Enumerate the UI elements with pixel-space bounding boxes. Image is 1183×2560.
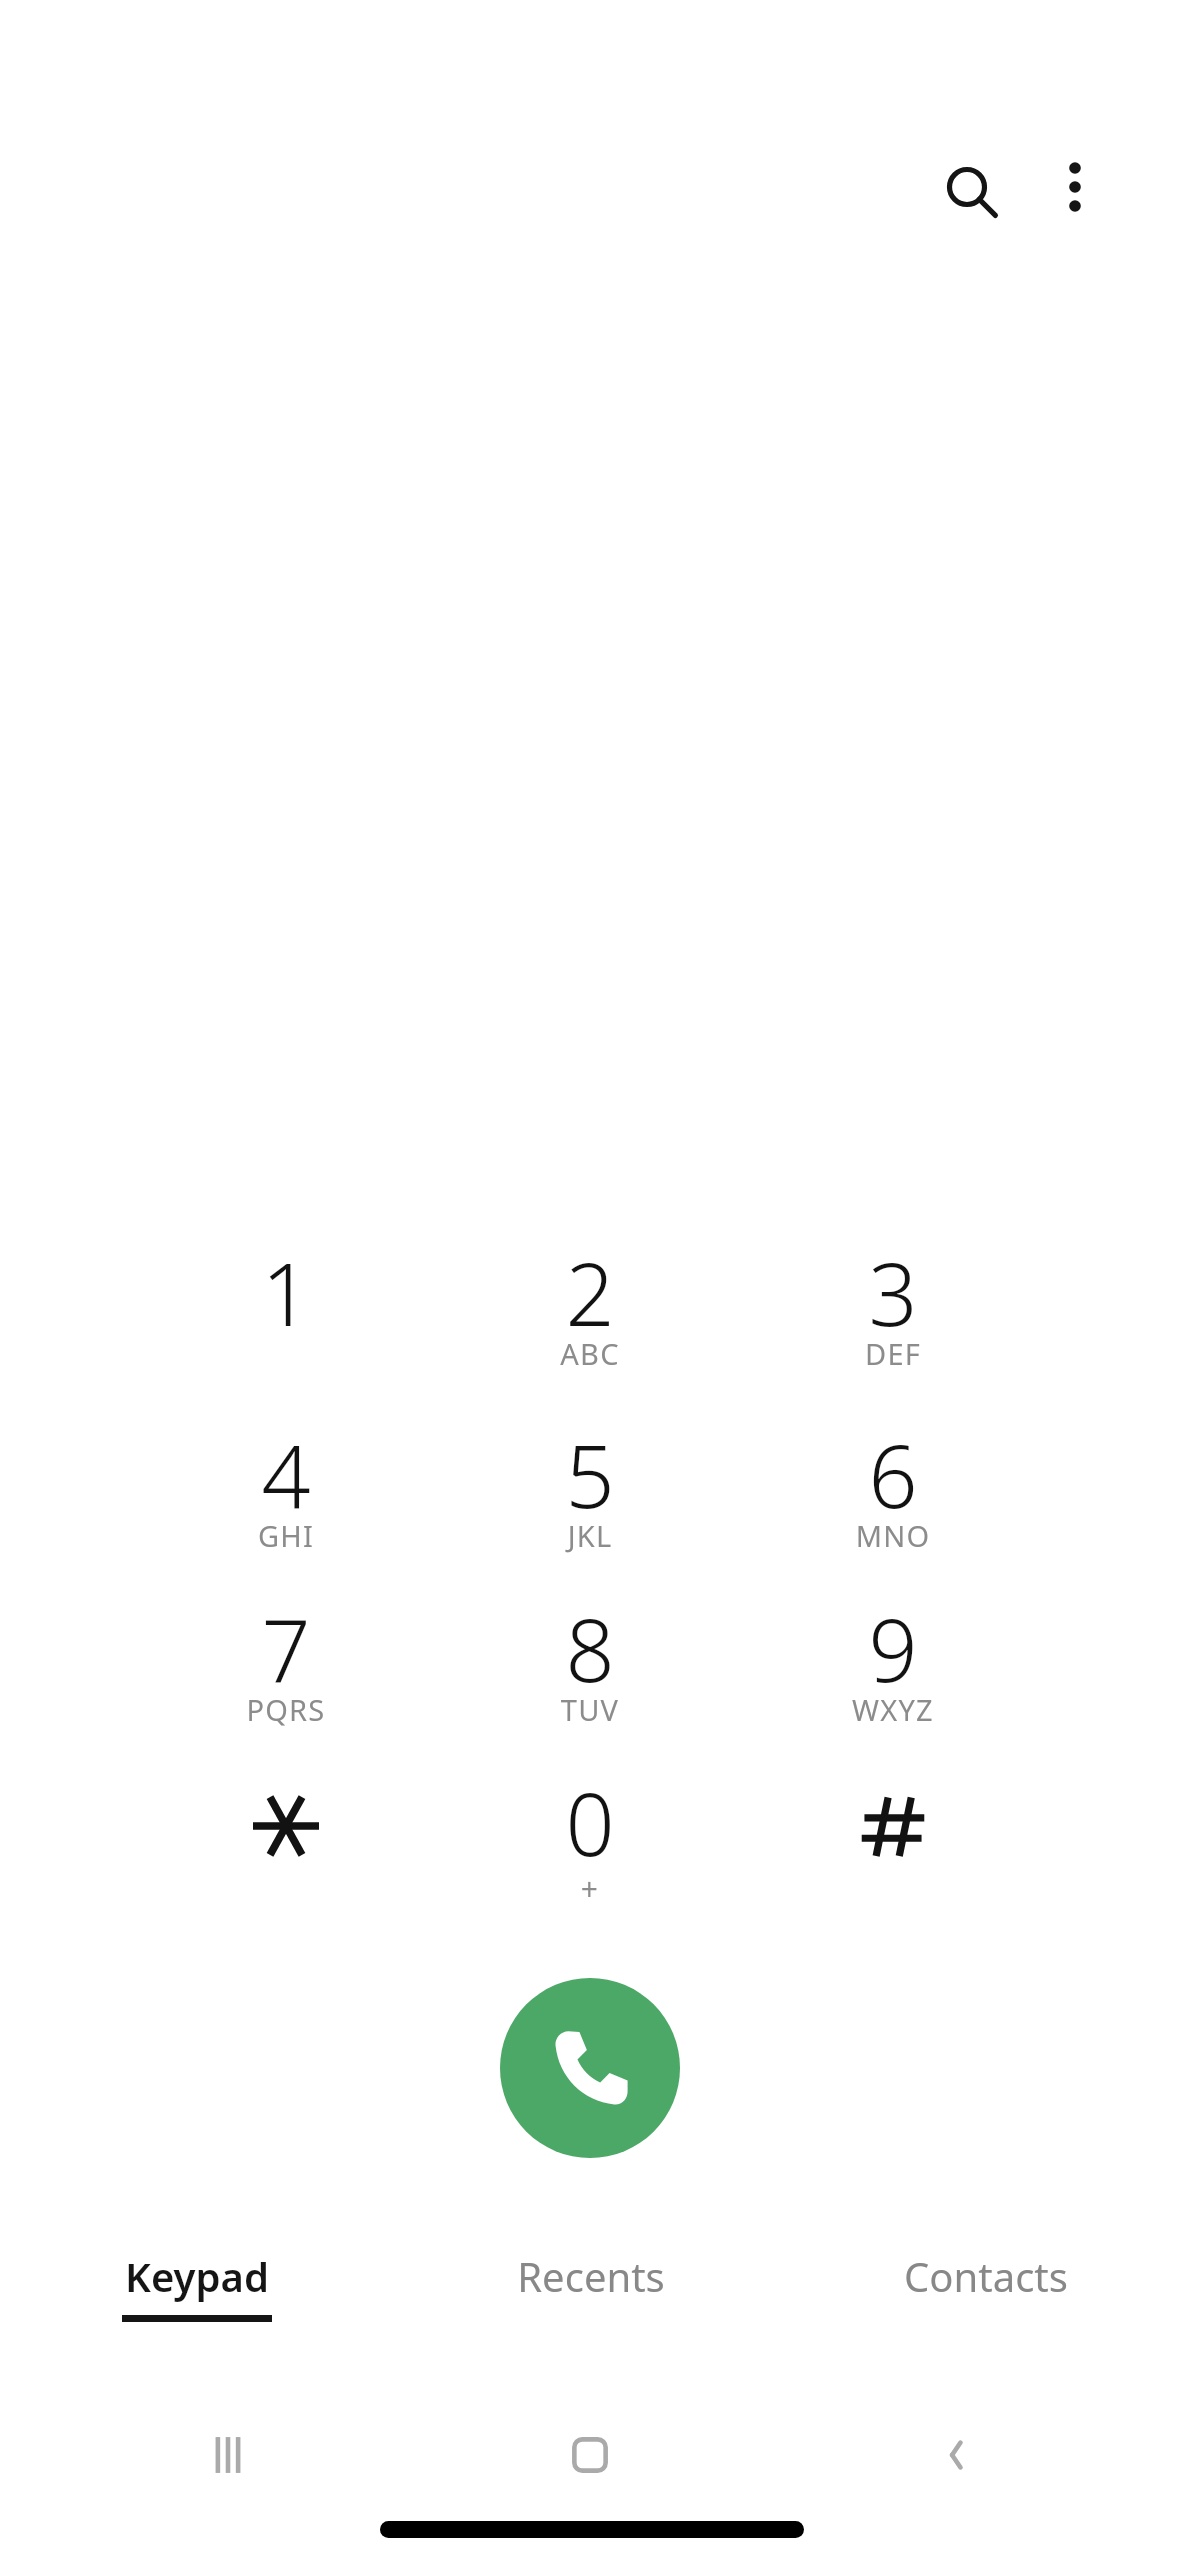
button[interactable]: Home bbox=[530, 2395, 650, 2515]
button[interactable]: Star bbox=[166, 1737, 406, 1915]
staticText: Recents bbox=[517, 2249, 665, 2303]
button[interactable]: Pound bbox=[773, 1737, 1013, 1915]
staticText: 4 bbox=[166, 1416, 406, 1533]
staticText: 8 bbox=[470, 1590, 710, 1707]
staticText: MNO bbox=[773, 1516, 1013, 1555]
button[interactable]: Call bbox=[500, 1978, 680, 2158]
button[interactable]: 4 bbox=[166, 1416, 406, 1594]
button[interactable]: Recent apps bbox=[168, 2395, 288, 2515]
staticText: + bbox=[470, 1868, 710, 1909]
button[interactable]: 3 bbox=[773, 1234, 1013, 1412]
staticText: Keypad bbox=[125, 2249, 269, 2303]
button[interactable]: Search bbox=[922, 142, 1014, 234]
staticText: WXYZ bbox=[773, 1690, 1013, 1729]
button[interactable]: 9 bbox=[773, 1590, 1013, 1768]
button[interactable]: More options bbox=[1029, 142, 1121, 234]
button[interactable]: Contacts bbox=[789, 2220, 1183, 2350]
staticText: 6 bbox=[773, 1416, 1013, 1533]
staticText: GHI bbox=[166, 1516, 406, 1555]
button[interactable]: Keypad bbox=[0, 2220, 394, 2350]
button[interactable]: 5 bbox=[470, 1416, 710, 1594]
staticText: ABC bbox=[470, 1334, 710, 1373]
staticText: DEF bbox=[773, 1334, 1013, 1373]
button[interactable]: 6 bbox=[773, 1416, 1013, 1594]
staticText: PQRS bbox=[166, 1690, 406, 1729]
button[interactable]: 8 bbox=[470, 1590, 710, 1768]
staticText: TUV bbox=[470, 1690, 710, 1729]
staticText: 7 bbox=[166, 1590, 406, 1707]
button[interactable]: Recents bbox=[394, 2220, 788, 2350]
staticText: 9 bbox=[773, 1590, 1013, 1707]
button[interactable]: 0 bbox=[470, 1764, 710, 1942]
staticText: 2 bbox=[470, 1234, 710, 1351]
button[interactable]: Back bbox=[895, 2395, 1015, 2515]
button[interactable]: 7 bbox=[166, 1590, 406, 1768]
button[interactable]: 1 bbox=[166, 1234, 406, 1412]
staticText: 5 bbox=[470, 1416, 710, 1533]
staticText: JKL bbox=[470, 1516, 710, 1555]
button[interactable]: 2 bbox=[470, 1234, 710, 1412]
staticText: Contacts bbox=[904, 2249, 1068, 2303]
staticText: 0 bbox=[470, 1764, 710, 1881]
staticText: 3 bbox=[773, 1234, 1013, 1351]
staticText: 1 bbox=[166, 1234, 406, 1351]
